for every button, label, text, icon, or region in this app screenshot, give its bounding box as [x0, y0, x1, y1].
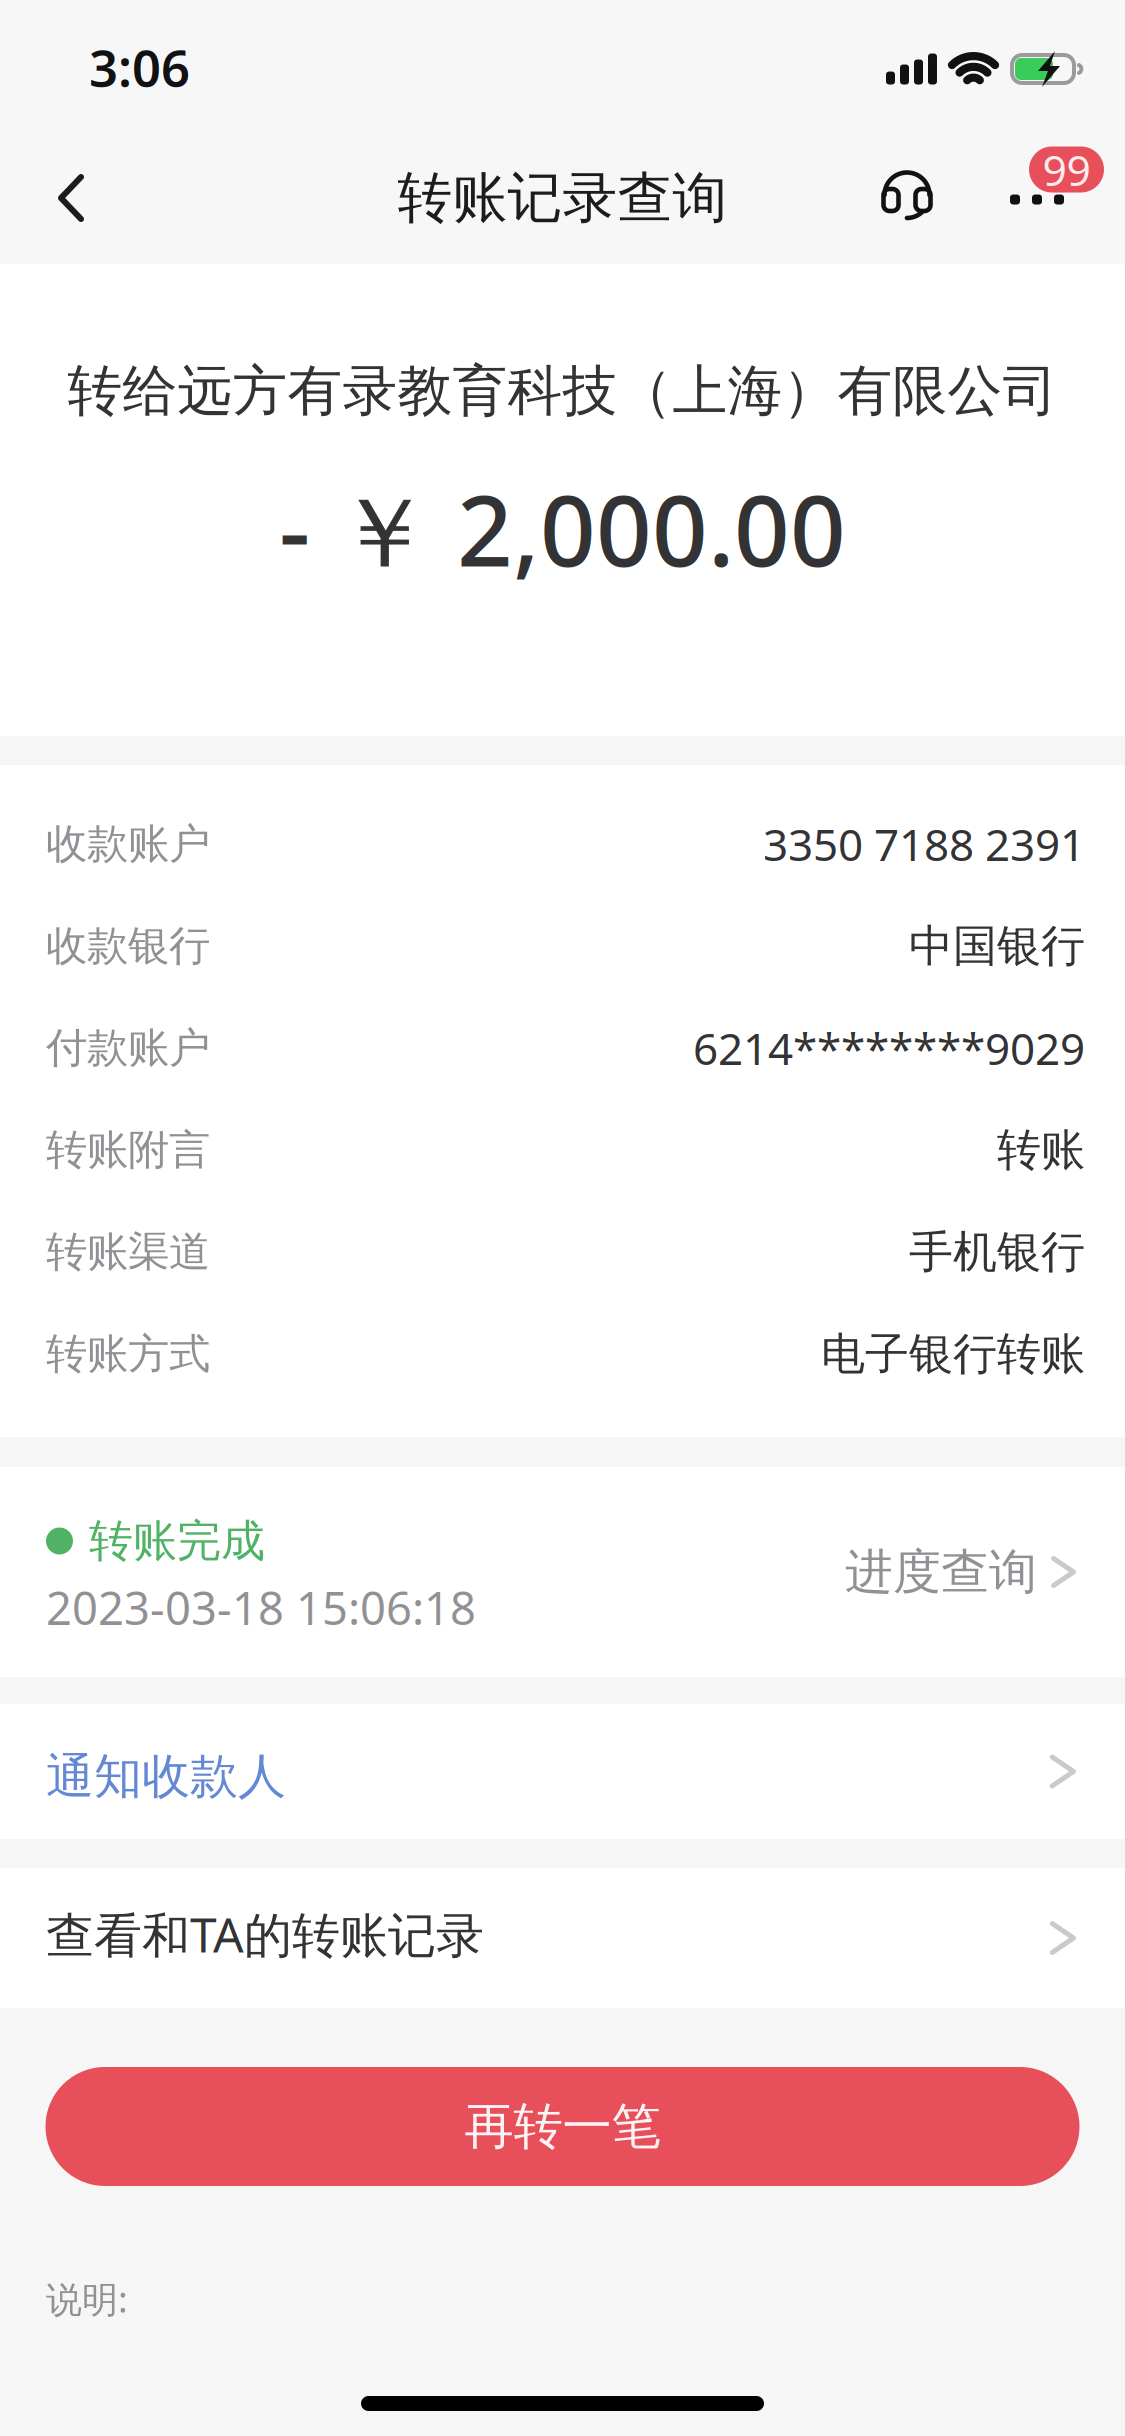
staticText: 进度查询 [845, 1542, 1037, 1601]
staticText: 电子银行转账 [821, 1327, 1085, 1381]
staticText: 中国银行 [909, 919, 1085, 973]
staticText: 转账 [997, 1123, 1085, 1177]
staticText: 转给远方有录教育科技（上海）有限公司 [67, 357, 1057, 424]
staticText: 收款银行 [46, 921, 210, 971]
staticText: 3:06 [89, 33, 190, 101]
staticText: 3350 7188 2391 [763, 815, 1085, 873]
staticText: 付款账户 [46, 1023, 210, 1073]
button[interactable]: 通知收款人 [0, 1704, 1125, 1839]
staticText: 转账渠道 [46, 1227, 210, 1277]
staticText: 说明: [46, 2275, 128, 2323]
staticText: 转账记录查询 [397, 164, 727, 231]
staticText: - ￥ 2,000.00 [279, 464, 846, 594]
staticText: 转账方式 [46, 1329, 210, 1379]
staticText: 手机银行 [909, 1225, 1085, 1279]
button[interactable]: 再转一笔 [45, 2067, 1079, 2186]
button[interactable]: 返回 [0, 132, 124, 264]
staticText: 转账附言 [46, 1125, 210, 1175]
staticText: 再转一笔 [464, 2096, 660, 2157]
button[interactable]: 转账完成 [0, 1467, 1125, 1677]
button[interactable]: 更多 [1004, 132, 1098, 264]
staticText: 2023-03-18 15:06:18 [46, 1577, 476, 1638]
button[interactable]: 查看和TA的转账记录 [0, 1868, 1125, 2008]
staticText: 99 [1042, 141, 1090, 198]
staticText: 通知收款人 [46, 1747, 286, 1806]
staticText: 查看和TA的转账记录 [46, 1902, 484, 1966]
button[interactable]: 客服 [894, 132, 1004, 264]
staticText: 转账完成 [89, 1514, 265, 1568]
staticText: 6214********9029 [693, 1019, 1085, 1077]
staticText: 收款账户 [46, 819, 210, 869]
